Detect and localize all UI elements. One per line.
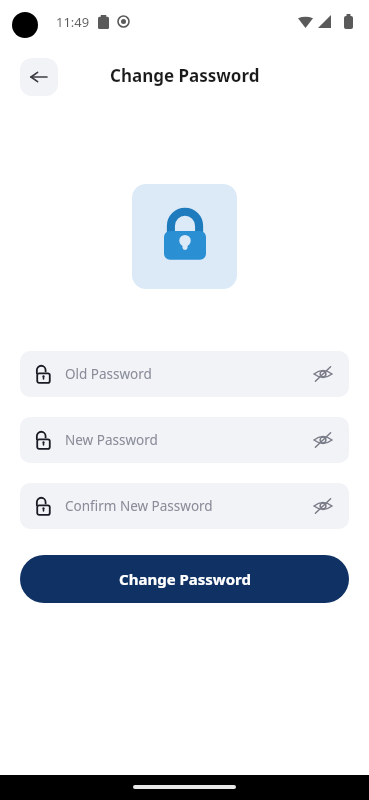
staticText: Change Password [119,569,251,589]
button[interactable]: New Password [20,417,349,463]
button[interactable]: Show password [311,362,335,386]
button[interactable]: Change Password [20,555,349,603]
button[interactable]: Show password [311,428,335,452]
staticText: Confirm New Password [65,497,213,515]
staticText: New Password [65,431,158,449]
staticText: Old Password [65,365,152,383]
button[interactable]: Back [20,58,58,96]
staticText: 11:49 [56,13,90,31]
button[interactable]: Show password [311,494,335,518]
staticText: Change Password [110,64,260,87]
button[interactable]: Confirm New Password [20,483,349,529]
button[interactable]: Old Password [20,351,349,397]
